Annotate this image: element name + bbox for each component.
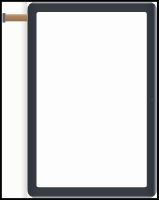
- button[interactable]: Tablet touchscreen digitizer glass: [0, 0, 159, 200]
